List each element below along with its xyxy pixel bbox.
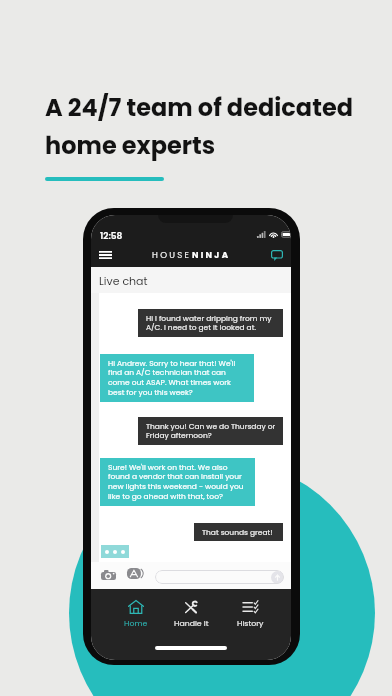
staticText: Thank you! Can we do Thursday or Friday … (146, 421, 275, 441)
button[interactable]: History (226, 598, 274, 631)
staticText: HOUSE (152, 249, 192, 261)
button[interactable]: Hi I found water dripping from my A/C. I… (138, 309, 283, 337)
staticText: Live chat (99, 273, 148, 288)
staticText: NINJA (192, 249, 231, 261)
button[interactable]: Send (155, 570, 284, 584)
button[interactable]: That sounds great! (194, 523, 283, 541)
staticText: Handle It (174, 618, 209, 629)
staticText: A 24/7 team of dedicated home experts (45, 91, 353, 162)
staticText: 12:58 (100, 230, 123, 243)
button[interactable]: Camera (101, 569, 116, 580)
button[interactable]: Sure! We'll work on that. We also found … (100, 458, 255, 506)
button[interactable]: Menu (94, 244, 116, 266)
staticText: That sounds great! (202, 527, 273, 537)
button[interactable]: Hi Andrew. Sorry to hear that! We'll fin… (100, 354, 254, 402)
button[interactable]: Live chat (266, 244, 288, 266)
button[interactable]: App Store (127, 568, 141, 579)
button[interactable]: Home (112, 598, 160, 631)
button[interactable]: Handle It (167, 598, 215, 631)
button[interactable]: Thank you! Can we do Thursday or Friday … (138, 417, 283, 445)
staticText: Sure! We'll work on that. We also found … (108, 462, 244, 502)
staticText: History (237, 618, 264, 629)
staticText: Hi I found water dripping from my A/C. I… (146, 313, 272, 333)
staticText: Hi Andrew. Sorry to hear that! We'll fin… (108, 358, 236, 398)
other: Send (271, 571, 284, 584)
staticText: Home (124, 618, 148, 629)
